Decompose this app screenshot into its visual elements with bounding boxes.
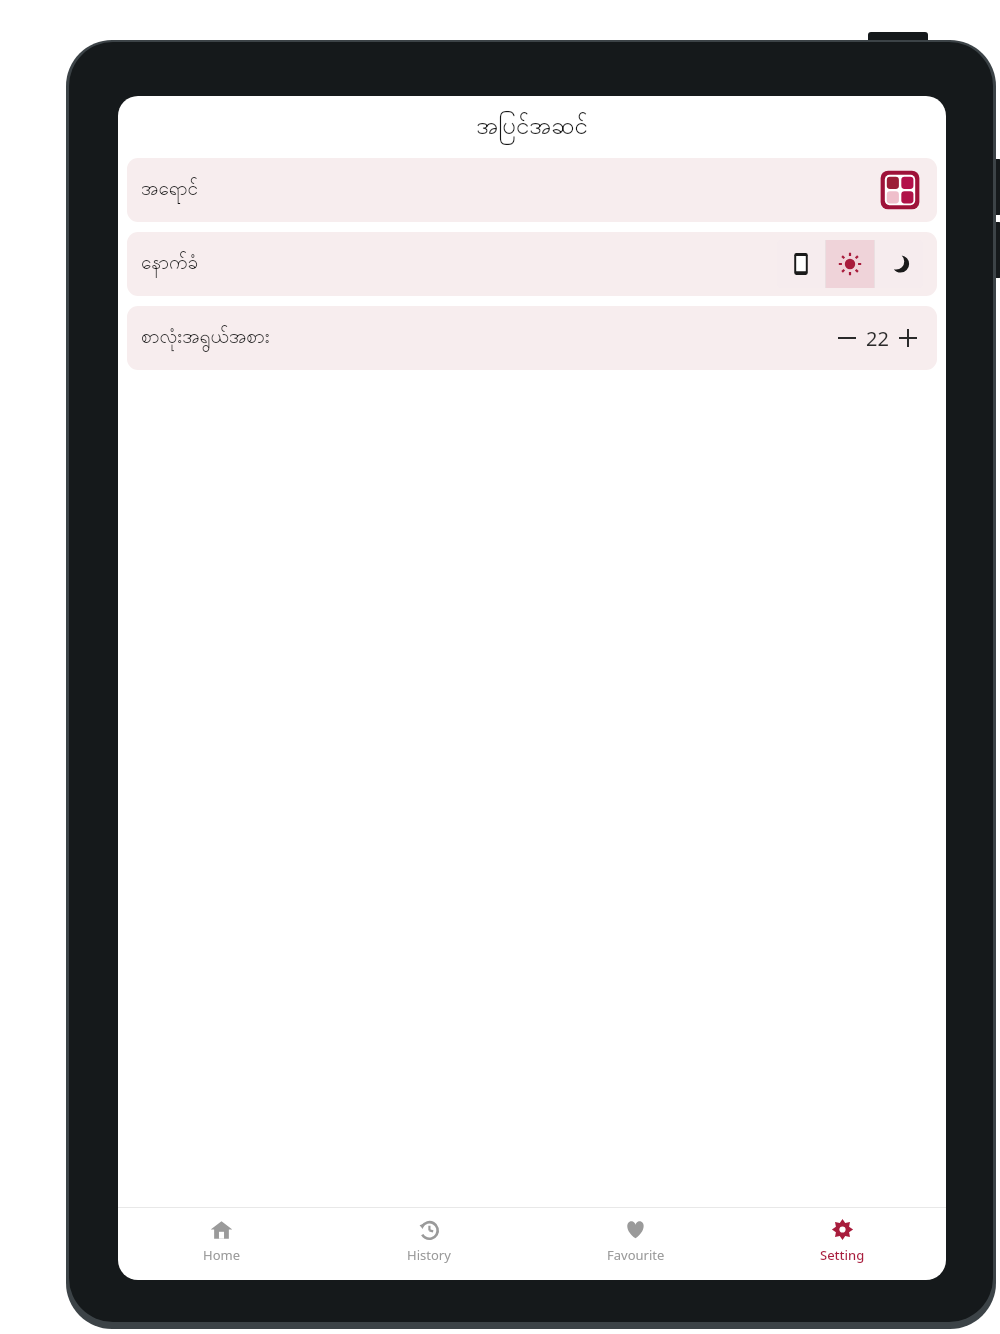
staticText: အပြင်အဆင် <box>476 110 588 145</box>
staticText: အရောင် <box>141 176 199 204</box>
button[interactable]: အရောင် <box>127 158 937 222</box>
button[interactable]: Favourite <box>532 1208 739 1274</box>
button[interactable]: Light theme <box>826 240 874 288</box>
button[interactable]: Increase font size <box>893 323 923 353</box>
staticText: Home <box>203 1246 240 1264</box>
staticText: စာလုံးအရွယ်အစား <box>141 324 270 352</box>
button[interactable]: Setting <box>739 1208 946 1274</box>
button[interactable]: History <box>325 1208 532 1274</box>
staticText: Setting <box>820 1246 865 1264</box>
button[interactable]: စာလုံးအရွယ်အစား <box>127 306 937 370</box>
staticText: History <box>407 1246 451 1264</box>
staticText: နောက်ခံ <box>141 250 199 278</box>
button[interactable]: Home <box>118 1208 325 1274</box>
button[interactable]: System theme <box>777 240 825 288</box>
staticText: Favourite <box>607 1246 665 1264</box>
staticText: 22 <box>866 325 889 352</box>
button[interactable]: Theme colour <box>877 167 923 213</box>
button[interactable]: နောက်ခံ <box>127 232 937 296</box>
button[interactable]: Dark theme <box>875 240 923 288</box>
button[interactable]: Decrease font size <box>832 323 862 353</box>
